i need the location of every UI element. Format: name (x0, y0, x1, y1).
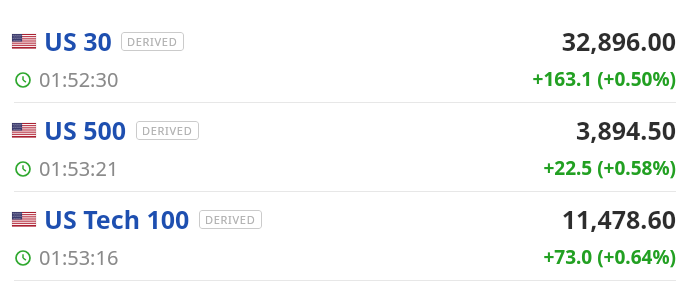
staticText: 32,896.00 (561, 24, 676, 58)
other: Market time (15, 250, 31, 266)
staticText: DERIVED (205, 212, 256, 227)
staticText: 3,894.50 (576, 113, 676, 147)
button[interactable]: United States (0, 14, 690, 102)
staticText: DERIVED (142, 123, 193, 138)
staticText: DERIVED (127, 34, 178, 49)
button[interactable]: DERIVED (205, 212, 256, 227)
staticText: +73.0 (+0.64%) (543, 244, 676, 270)
staticText: 11,478.60 (561, 202, 676, 236)
staticText: 01:53:16 (39, 244, 119, 271)
button[interactable]: United States (0, 103, 690, 191)
button[interactable]: United States (0, 192, 690, 280)
other: United States (12, 212, 36, 226)
staticText: US 500 (44, 113, 127, 147)
other: United States (12, 34, 36, 48)
other: United States (12, 123, 36, 137)
staticText: +22.5 (+0.58%) (543, 155, 676, 181)
staticText: 01:53:21 (39, 155, 119, 182)
staticText: 01:52:30 (39, 66, 119, 93)
other: Market time (15, 72, 31, 88)
staticText: US Tech 100 (44, 202, 190, 236)
other: Market time (15, 161, 31, 177)
button[interactable]: DERIVED (127, 34, 178, 49)
staticText: US 30 (44, 24, 112, 58)
staticText: +163.1 (+0.50%) (532, 66, 676, 92)
button[interactable]: DERIVED (142, 123, 193, 138)
